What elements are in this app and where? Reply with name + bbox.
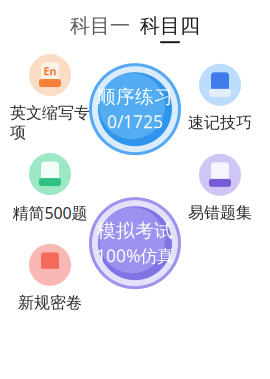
button[interactable]: 科目四	[135, 14, 205, 43]
staticText: 0/1725	[107, 110, 163, 133]
button[interactable]	[8, 242, 92, 312]
button[interactable]	[8, 151, 92, 223]
staticText: En	[43, 64, 56, 78]
staticText: 科目一	[70, 14, 130, 38]
staticText: 易错题集	[188, 203, 252, 222]
button[interactable]: 科目一	[65, 14, 135, 43]
staticText: 模拟考试	[97, 219, 173, 242]
staticText: 100%仿真	[96, 244, 174, 267]
staticText: 顺序练习	[97, 85, 173, 108]
staticText: 科目四	[140, 14, 200, 38]
staticText: 速记技巧	[188, 113, 252, 132]
button[interactable]: 顺序练习	[87, 61, 183, 157]
button[interactable]: En	[8, 52, 92, 142]
button[interactable]	[178, 62, 262, 132]
button[interactable]: 模拟考试	[87, 195, 183, 291]
staticText: 精简500题	[12, 202, 87, 223]
staticText: 英文缩写专项	[10, 103, 90, 142]
staticText: 新规密卷	[18, 293, 82, 312]
button[interactable]	[178, 152, 262, 222]
